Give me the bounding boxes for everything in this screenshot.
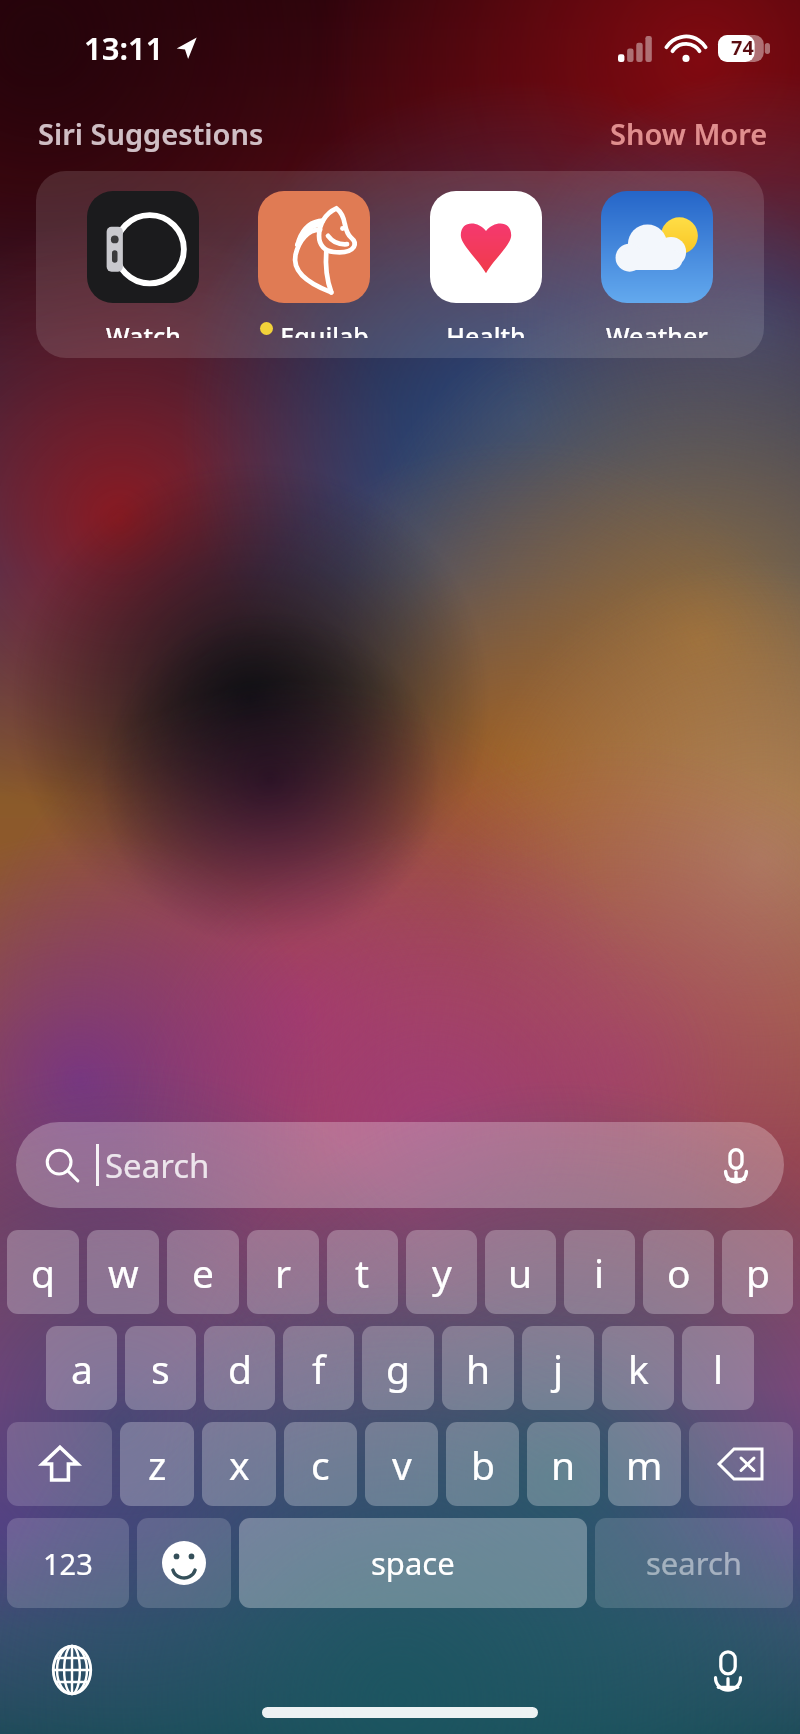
staticText: x — [229, 1438, 250, 1491]
staticText: Show More — [610, 114, 768, 153]
staticText: 74 — [731, 34, 754, 61]
staticText: v — [392, 1438, 412, 1491]
staticText: Health — [446, 319, 526, 338]
staticText: 13:11 — [84, 27, 164, 69]
button[interactable]: Search — [16, 1122, 784, 1208]
staticText: t — [355, 1246, 370, 1299]
staticText: w — [108, 1246, 139, 1299]
staticText: b — [471, 1438, 495, 1491]
button[interactable]: q — [7, 1230, 79, 1314]
staticText: f — [312, 1342, 326, 1395]
staticText: search — [646, 1542, 742, 1584]
button[interactable]: u — [485, 1230, 556, 1314]
staticText: j — [553, 1342, 564, 1395]
button[interactable]: m — [608, 1422, 681, 1506]
button[interactable]: h — [442, 1326, 514, 1410]
staticText: h — [466, 1342, 491, 1395]
button[interactable]: l — [682, 1326, 754, 1410]
button[interactable]: w — [87, 1230, 159, 1314]
button[interactable]: Dictation — [700, 1642, 756, 1698]
staticText: r — [275, 1246, 292, 1299]
button[interactable]: f — [283, 1326, 354, 1410]
staticText: n — [551, 1438, 576, 1491]
button[interactable]: z — [120, 1422, 194, 1506]
button[interactable]: x — [202, 1422, 276, 1506]
staticText: y — [432, 1246, 452, 1299]
staticText: Watch — [106, 319, 181, 338]
button[interactable]: Voice search — [714, 1143, 758, 1187]
button[interactable]: s — [125, 1326, 196, 1410]
staticText: e — [192, 1246, 214, 1299]
button[interactable]: i — [564, 1230, 635, 1314]
staticText: s — [151, 1342, 170, 1395]
button[interactable]: space — [239, 1518, 587, 1608]
button[interactable]: Show More — [610, 114, 768, 153]
button[interactable]: y — [406, 1230, 477, 1314]
button[interactable]: Equilab — [244, 191, 384, 338]
button[interactable]: c — [284, 1422, 357, 1506]
staticText: Search — [105, 1143, 210, 1188]
button[interactable]: r — [247, 1230, 319, 1314]
button[interactable]: Health — [416, 191, 556, 338]
button[interactable]: p — [722, 1230, 793, 1314]
button[interactable]: Shift — [7, 1422, 112, 1506]
staticText: z — [148, 1438, 167, 1491]
staticText: m — [626, 1438, 663, 1491]
staticText: 123 — [43, 1544, 93, 1583]
staticText: q — [31, 1246, 55, 1299]
button[interactable]: o — [643, 1230, 714, 1314]
button[interactable]: t — [327, 1230, 398, 1314]
staticText: p — [746, 1246, 770, 1299]
button[interactable]: g — [362, 1326, 434, 1410]
staticText: c — [311, 1438, 330, 1491]
staticText: a — [71, 1342, 93, 1395]
staticText: Siri Suggestions — [38, 114, 264, 153]
staticText: u — [508, 1246, 533, 1299]
button[interactable]: Watch — [73, 191, 213, 338]
staticText: space — [371, 1542, 455, 1584]
staticText: Equilab — [280, 319, 369, 338]
button[interactable]: Emoji — [137, 1518, 231, 1608]
staticText: Weather — [606, 319, 708, 338]
button[interactable]: d — [204, 1326, 275, 1410]
button[interactable]: Weather — [587, 191, 727, 338]
staticText: o — [667, 1246, 691, 1299]
button[interactable]: b — [446, 1422, 519, 1506]
button[interactable]: a — [46, 1326, 117, 1410]
button[interactable]: k — [602, 1326, 674, 1410]
button[interactable]: e — [167, 1230, 239, 1314]
staticText: g — [386, 1342, 410, 1395]
button[interactable]: j — [522, 1326, 594, 1410]
button[interactable]: Change keyboard language — [44, 1642, 100, 1698]
staticText: k — [628, 1342, 649, 1395]
button[interactable]: search — [595, 1518, 793, 1608]
staticText: i — [594, 1246, 605, 1299]
staticText: d — [228, 1342, 252, 1395]
button[interactable]: v — [365, 1422, 438, 1506]
button[interactable]: Backspace — [689, 1422, 793, 1506]
button[interactable]: 123 — [7, 1518, 129, 1608]
button[interactable]: n — [527, 1422, 600, 1506]
staticText: l — [713, 1342, 724, 1395]
